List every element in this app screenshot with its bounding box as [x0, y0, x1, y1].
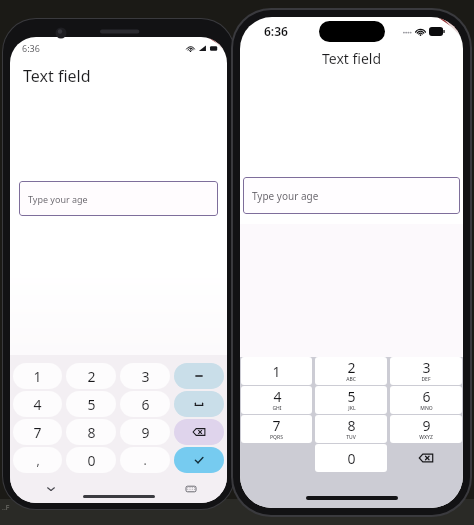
- staticText: 7: [33, 423, 42, 442]
- staticText: 2: [347, 358, 356, 377]
- staticText: DEF: [421, 376, 431, 383]
- button[interactable]: .: [120, 447, 170, 473]
- button[interactable]: 9: [390, 415, 462, 443]
- staticText: 6: [141, 395, 150, 414]
- button[interactable]: Backspace: [390, 444, 462, 472]
- staticText: Text field: [240, 49, 463, 68]
- button[interactable]: Space: [174, 391, 224, 417]
- staticText: 8: [347, 416, 356, 435]
- button[interactable]: 4: [241, 386, 312, 414]
- button[interactable]: 8: [315, 415, 387, 443]
- staticText: JKL: [348, 405, 356, 412]
- button[interactable]: Minus: [174, 363, 224, 389]
- button[interactable]: Type your age: [243, 177, 460, 214]
- staticText: ABC: [346, 376, 356, 383]
- staticText: 5: [87, 395, 96, 414]
- button[interactable]: 3: [120, 363, 170, 389]
- staticText: 0: [87, 451, 96, 470]
- staticText: PQRS: [270, 434, 283, 441]
- staticText: 3: [141, 367, 150, 386]
- staticText: Prettier: [358, 503, 383, 513]
- staticText: Type your age: [28, 193, 88, 205]
- button[interactable]: Type your age: [19, 181, 218, 216]
- staticText: 5: [347, 387, 356, 406]
- staticText: 4: [273, 387, 282, 406]
- button[interactable]: 2: [66, 363, 116, 389]
- staticText: Text field: [23, 65, 91, 87]
- button[interactable]: 3: [390, 357, 462, 385]
- staticText: 9: [141, 423, 150, 442]
- button[interactable]: 7: [241, 415, 312, 443]
- button[interactable]: 6: [390, 386, 462, 414]
- button[interactable]: 9: [120, 419, 170, 445]
- button[interactable]: Backspace: [174, 419, 224, 445]
- staticText: ulator): [320, 503, 342, 513]
- button[interactable]: 5: [315, 386, 387, 414]
- button[interactable]: Hide keyboard: [45, 483, 57, 495]
- staticText: 8: [87, 423, 96, 442]
- staticText: 4: [33, 395, 42, 414]
- staticText: .: [143, 452, 147, 468]
- button[interactable]: 6: [120, 391, 170, 417]
- button[interactable]: Change keyboard: [186, 484, 196, 494]
- staticText: GHI: [272, 405, 282, 412]
- staticText: WXYZ: [419, 434, 433, 441]
- staticText: MNO: [420, 405, 433, 412]
- button[interactable]: 4: [13, 391, 62, 417]
- staticText: 7: [272, 416, 281, 435]
- staticText: 3: [422, 358, 431, 377]
- staticText: 6: [422, 387, 431, 406]
- button[interactable]: 7: [13, 419, 62, 445]
- button[interactable]: 2: [315, 357, 387, 385]
- button[interactable]: 1: [241, 357, 312, 385]
- button[interactable]: Done: [174, 447, 224, 473]
- staticText: Type your age: [252, 189, 319, 203]
- button[interactable]: 0: [66, 447, 116, 473]
- staticText: 0: [347, 449, 356, 468]
- staticText: 1: [33, 367, 42, 386]
- button[interactable]: 8: [66, 419, 116, 445]
- staticText: TUV: [346, 434, 356, 441]
- staticText: 9: [422, 416, 431, 435]
- staticText: 6:36: [264, 23, 288, 39]
- staticText: 2: [87, 367, 96, 386]
- button[interactable]: 0: [315, 444, 387, 472]
- button[interactable]: 5: [66, 391, 116, 417]
- staticText: ..F: [2, 503, 10, 513]
- staticText: 6:36: [22, 42, 40, 54]
- button[interactable]: ,: [13, 447, 62, 473]
- staticText: 1: [272, 362, 281, 381]
- button[interactable]: 1: [13, 363, 62, 389]
- staticText: ,: [36, 452, 40, 468]
